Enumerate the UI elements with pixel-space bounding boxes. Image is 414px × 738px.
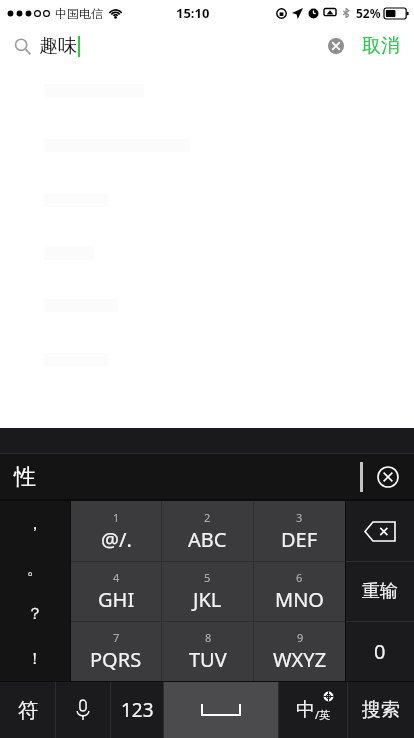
button[interactable]: Dismiss keyboard <box>372 461 404 493</box>
button[interactable]: Space <box>164 682 278 738</box>
staticText: 重输 <box>362 580 398 603</box>
button[interactable]: 6 <box>254 562 345 621</box>
staticText: 趣味 <box>39 34 77 58</box>
staticText: 6 <box>296 570 303 585</box>
button[interactable]: 0 <box>346 622 414 681</box>
staticText: 搜索 <box>362 698 400 722</box>
button[interactable]: ， <box>0 501 70 546</box>
staticText: 1 <box>113 510 120 525</box>
button[interactable]: 8 <box>162 622 253 681</box>
staticText: ！ <box>27 649 43 669</box>
staticText: JKL <box>193 586 222 613</box>
button[interactable]: ！ <box>0 636 70 681</box>
button[interactable]: ？ <box>0 591 70 636</box>
staticText: 中国电信 <box>55 6 103 21</box>
staticText: 中 <box>296 698 315 722</box>
staticText: ？ <box>27 604 43 624</box>
staticText: 52% <box>356 5 381 21</box>
staticText: 4 <box>113 570 120 585</box>
staticText: DEF <box>281 526 318 553</box>
staticText: 3 <box>296 510 303 525</box>
staticText: /英 <box>315 707 331 722</box>
staticText: 7 <box>113 630 120 645</box>
button[interactable]: 3 <box>254 501 345 561</box>
staticText: TUV <box>189 646 227 673</box>
button[interactable]: 4 <box>71 562 161 621</box>
staticText: 符 <box>18 698 38 723</box>
staticText: MNO <box>275 586 324 613</box>
button[interactable]: 搜索 <box>348 682 414 738</box>
staticText: 5 <box>204 570 211 585</box>
staticText: 8 <box>205 630 212 645</box>
button[interactable]: 取消 <box>356 30 406 62</box>
button[interactable]: 9 <box>254 622 345 681</box>
staticText: ABC <box>188 526 227 553</box>
staticText: 。 <box>27 559 43 579</box>
button[interactable]: 2 <box>162 501 253 561</box>
button[interactable]: 中 <box>279 682 347 738</box>
button[interactable]: 重输 <box>346 562 414 621</box>
staticText: 取消 <box>362 34 400 58</box>
button[interactable]: 5 <box>162 562 253 621</box>
button[interactable]: 性 <box>14 463 36 491</box>
staticText: ， <box>27 514 43 534</box>
staticText: 123 <box>121 697 154 723</box>
staticText: PQRS <box>90 646 142 673</box>
button[interactable]: 。 <box>0 546 70 591</box>
staticText: WXYZ <box>273 646 327 673</box>
button[interactable]: Backspace <box>346 501 414 561</box>
staticText: @/. <box>101 526 132 553</box>
button[interactable]: 1 <box>71 501 161 561</box>
staticText: GHI <box>98 586 135 613</box>
staticText: 9 <box>297 630 304 645</box>
button[interactable]: 7 <box>71 622 161 681</box>
button[interactable]: 符 <box>0 682 55 738</box>
button[interactable]: Clear search text <box>322 32 350 60</box>
staticText: 2 <box>204 510 211 525</box>
button[interactable]: Voice input <box>56 682 110 738</box>
staticText: 15:10 <box>176 4 210 22</box>
button[interactable]: 123 <box>111 682 163 738</box>
staticText: 0 <box>374 638 386 665</box>
